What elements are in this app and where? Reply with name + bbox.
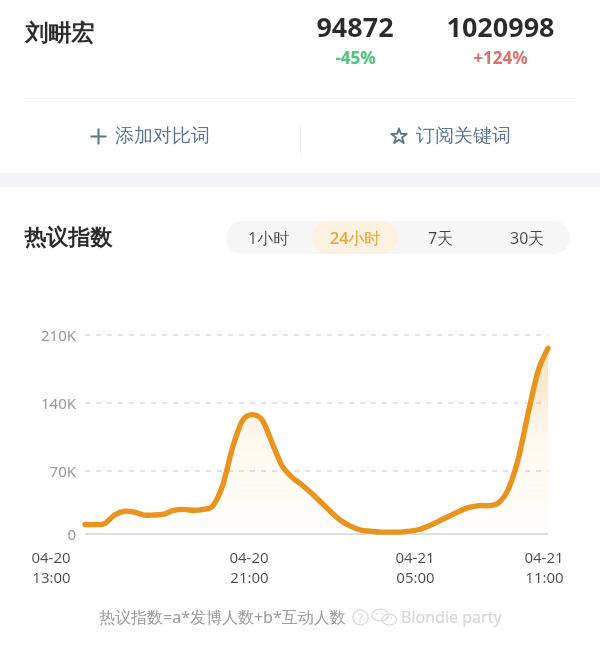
staticText: 04-21 xyxy=(395,547,435,567)
button[interactable]: 30天 xyxy=(484,221,570,254)
staticText: 11:00 xyxy=(525,567,564,587)
button[interactable]: 7天 xyxy=(398,221,484,254)
staticText: 04-20 xyxy=(31,547,71,567)
staticText: 订阅关键词 xyxy=(416,124,511,148)
staticText: 0 xyxy=(67,524,76,544)
button[interactable]: 订阅关键词 xyxy=(300,99,600,172)
staticText: 7天 xyxy=(428,227,454,249)
staticText: 94872 xyxy=(316,8,394,45)
staticText: 热议指数=a*发博人数+b*互动人数 xyxy=(99,606,346,628)
staticText: 30天 xyxy=(510,227,545,249)
staticText: 1小时 xyxy=(248,227,290,249)
staticText: 13:00 xyxy=(32,567,71,587)
button[interactable]: 24小时 xyxy=(312,221,398,254)
staticText: 04-20 xyxy=(229,547,269,567)
staticText: 140K xyxy=(40,393,76,413)
button[interactable]: 指标说明 xyxy=(352,609,369,626)
staticText: 1020998 xyxy=(446,8,555,45)
staticText: Blondie party xyxy=(401,606,502,628)
staticText: 热议指数 xyxy=(24,224,112,252)
staticText: 210K xyxy=(40,325,76,345)
staticText: +124% xyxy=(473,46,528,69)
button[interactable]: 添加对比词 xyxy=(0,99,300,172)
staticText: 21:00 xyxy=(230,567,269,587)
staticText: 05:00 xyxy=(396,567,435,587)
staticText: 04-21 xyxy=(524,547,564,567)
staticText: 添加对比词 xyxy=(115,124,210,148)
staticText: 刘畊宏 xyxy=(25,19,94,48)
staticText: ? xyxy=(358,610,363,625)
button[interactable]: 1小时 xyxy=(226,221,312,254)
staticText: 24小时 xyxy=(330,227,381,249)
staticText: 70K xyxy=(49,461,76,481)
staticText: -45% xyxy=(335,46,376,69)
